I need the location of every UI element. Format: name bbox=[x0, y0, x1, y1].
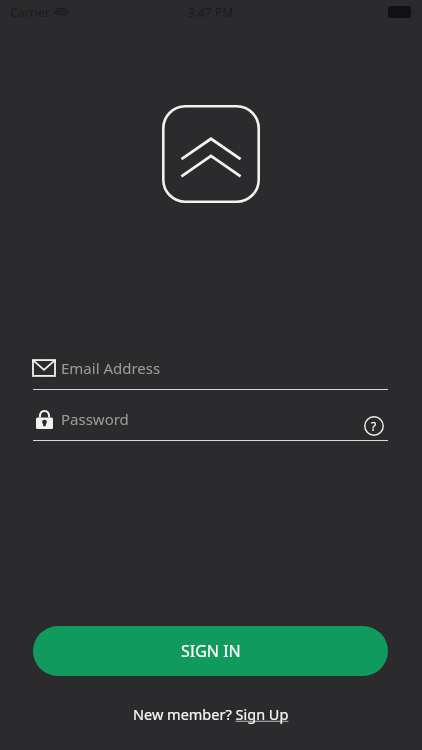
staticText: Password bbox=[61, 409, 129, 429]
button[interactable]: SIGN IN bbox=[33, 626, 388, 676]
staticText: 3:47 PM bbox=[188, 4, 234, 20]
button[interactable]: Password bbox=[33, 409, 388, 443]
button[interactable]: New member? Sign Up bbox=[125, 700, 297, 728]
staticText: ? bbox=[371, 418, 377, 434]
button[interactable]: Email Address bbox=[33, 358, 388, 392]
staticText: SIGN IN bbox=[181, 640, 241, 662]
button[interactable]: Password help bbox=[360, 412, 388, 440]
staticText: Carrier bbox=[10, 4, 50, 20]
staticText: Email Address bbox=[61, 358, 161, 378]
staticText: New member? Sign Up bbox=[133, 704, 289, 724]
